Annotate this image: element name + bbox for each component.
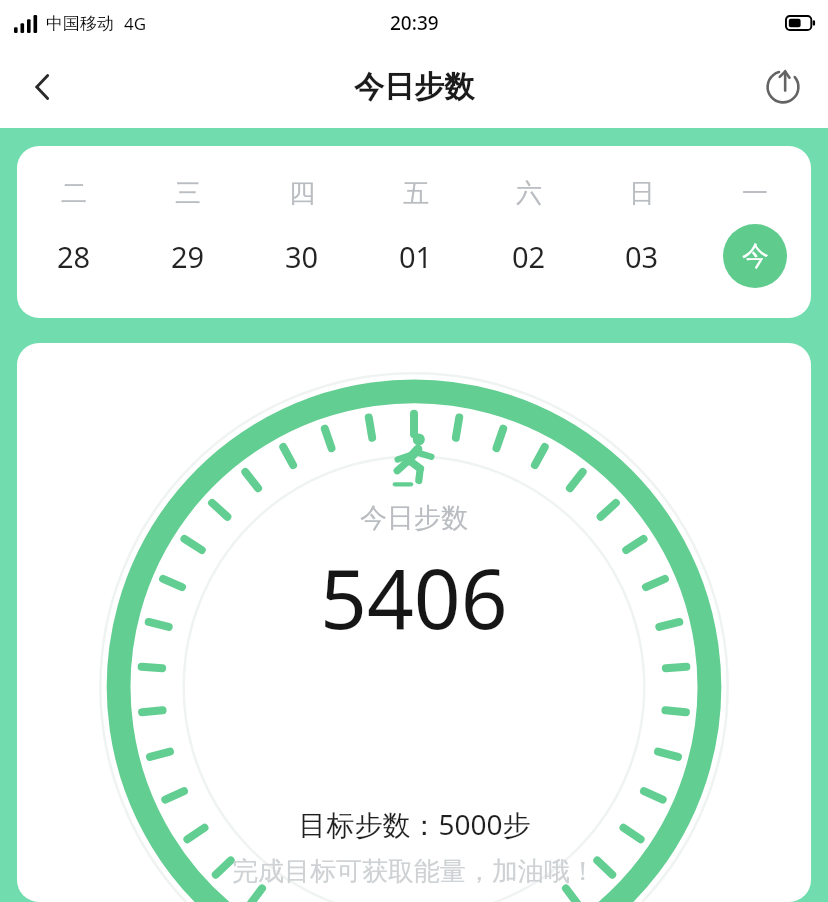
staticText: 二 bbox=[61, 177, 87, 210]
button[interactable]: 日 bbox=[585, 146, 698, 318]
staticText: 完成目标可获取能量，加油哦！ bbox=[232, 855, 596, 888]
staticText: 五 bbox=[403, 177, 429, 210]
button[interactable]: 五 bbox=[359, 146, 472, 318]
staticText: 01 bbox=[399, 237, 433, 276]
staticText: 30 bbox=[285, 237, 319, 276]
staticText: 今日步数 bbox=[360, 501, 468, 535]
staticText: 日 bbox=[629, 177, 655, 210]
staticText: 29 bbox=[171, 237, 205, 276]
staticText: 中国移动 bbox=[46, 13, 114, 34]
staticText: 28 bbox=[57, 237, 91, 276]
staticText: 六 bbox=[516, 177, 542, 210]
button[interactable]: 三 bbox=[131, 146, 245, 318]
staticText: 一 bbox=[742, 177, 768, 210]
button[interactable]: 四 bbox=[245, 146, 359, 318]
staticText: 今日步数 bbox=[354, 68, 474, 106]
button[interactable]: Share bbox=[750, 54, 816, 120]
button[interactable]: 二 bbox=[17, 146, 131, 318]
button[interactable]: 一 bbox=[698, 146, 811, 318]
staticText: 20:39 bbox=[390, 10, 439, 36]
staticText: 5406 bbox=[320, 541, 508, 653]
staticText: 目标步数：5000步 bbox=[298, 805, 531, 843]
button[interactable]: 六 bbox=[472, 146, 585, 318]
staticText: 4G bbox=[124, 12, 147, 35]
staticText: 今 bbox=[742, 239, 769, 273]
staticText: 02 bbox=[512, 237, 546, 276]
staticText: 三 bbox=[175, 177, 201, 210]
staticText: 四 bbox=[289, 177, 315, 210]
button[interactable]: Back bbox=[10, 54, 76, 120]
staticText: 03 bbox=[625, 237, 659, 276]
